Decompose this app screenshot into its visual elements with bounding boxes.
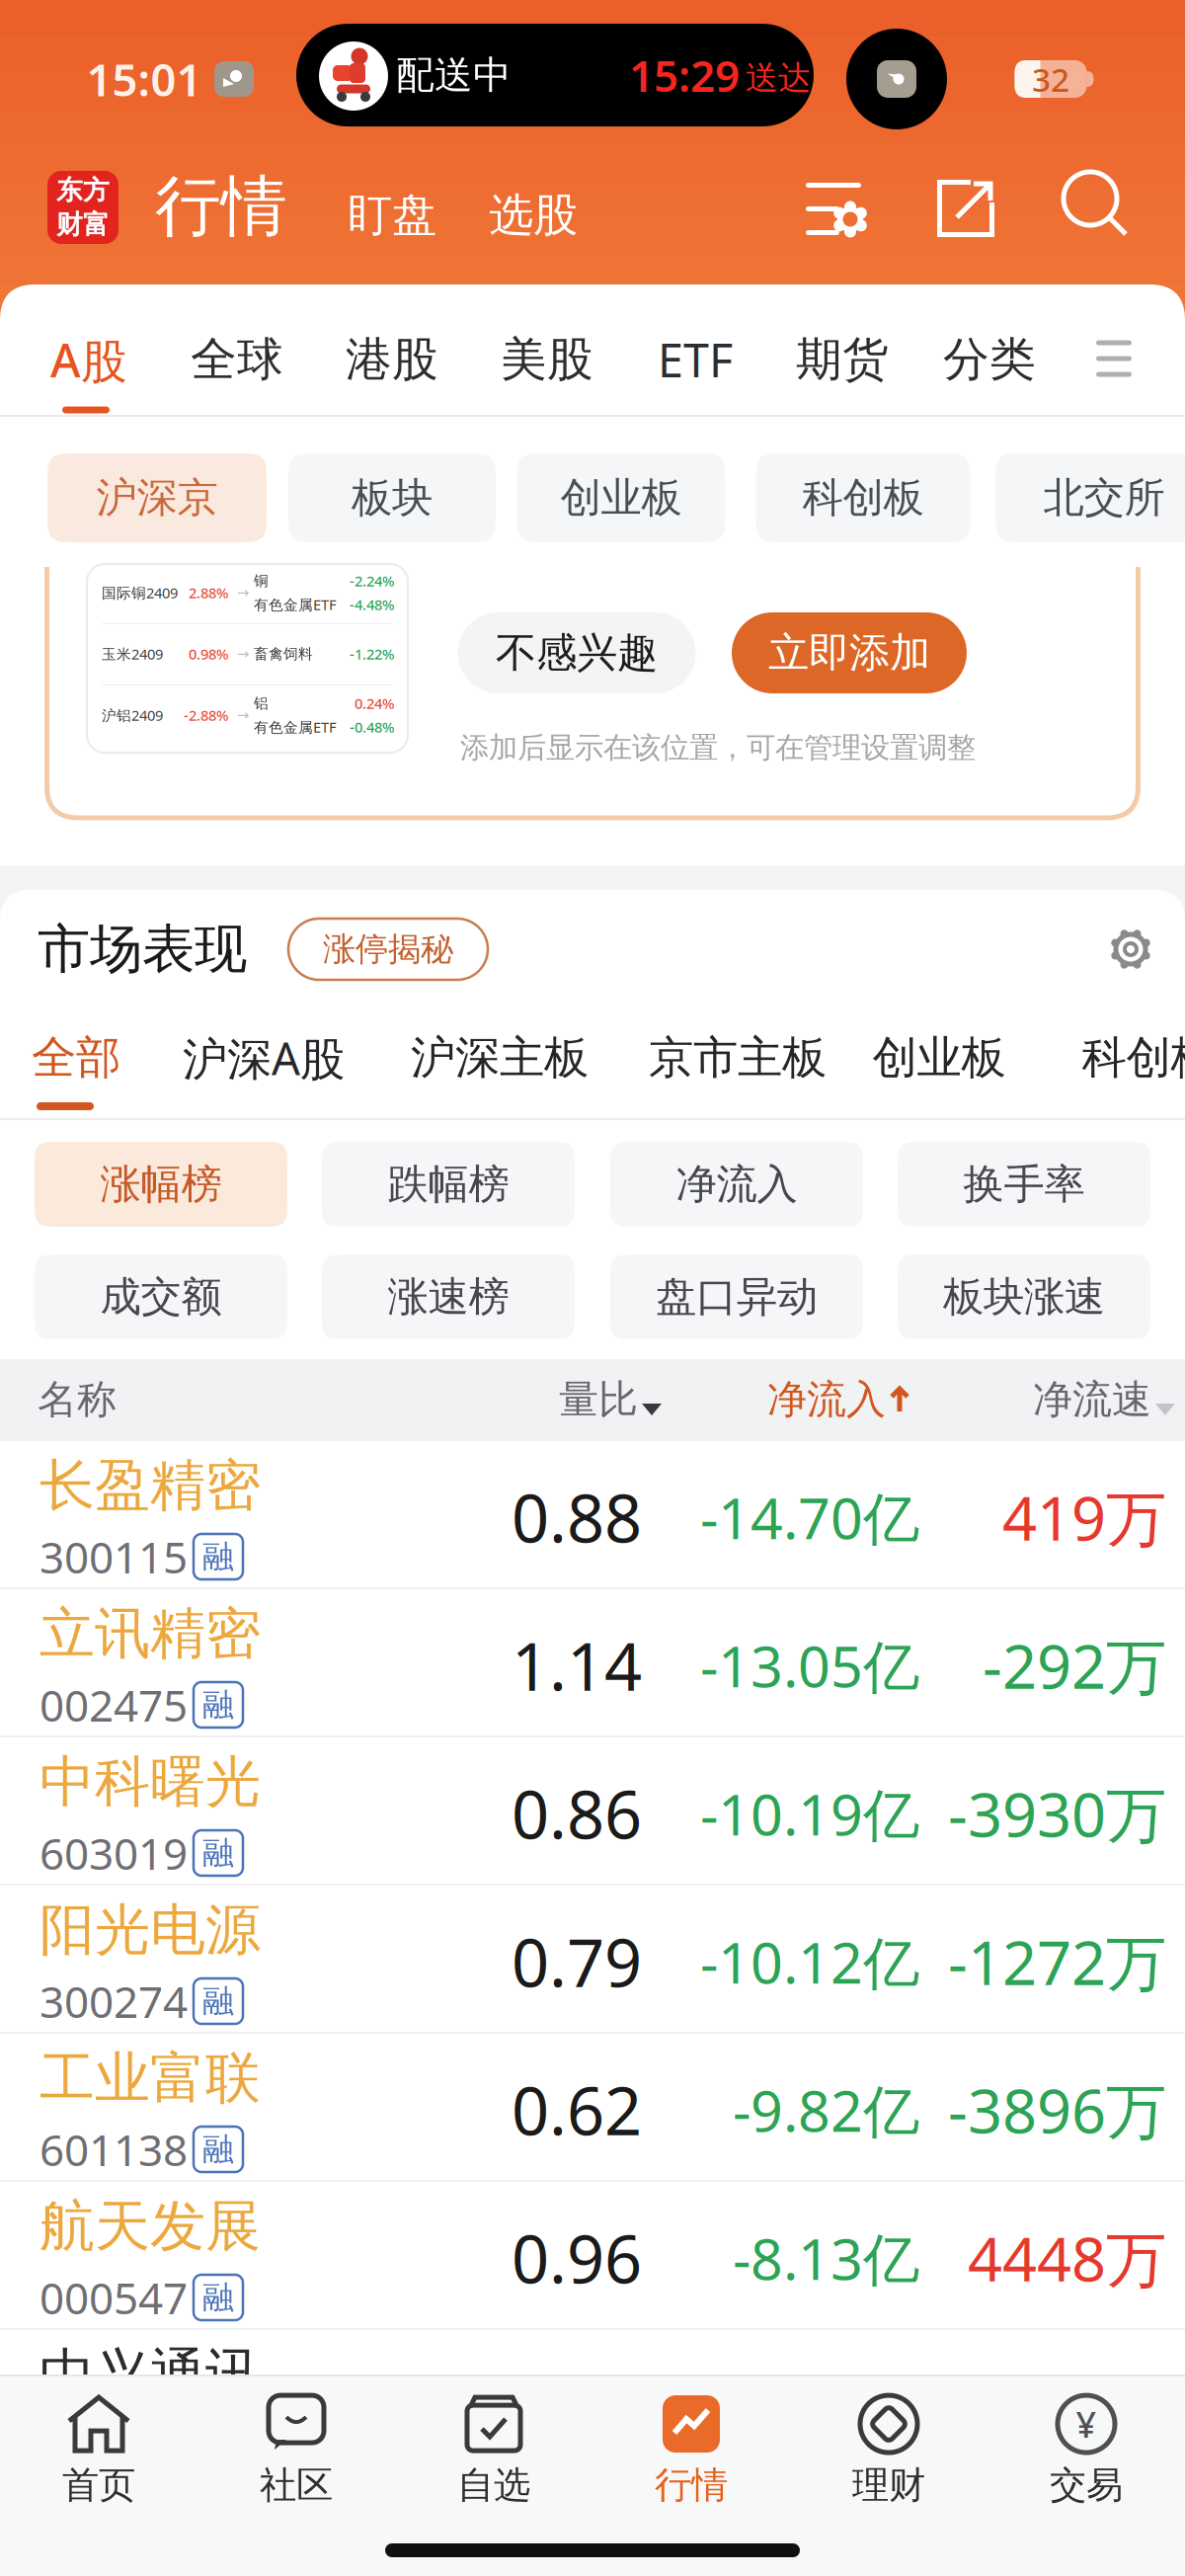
staticText: -3930万: [948, 1773, 1166, 1854]
staticText: ETF: [658, 329, 733, 390]
staticText: 量比: [559, 1375, 638, 1424]
staticText: 601138: [39, 2120, 188, 2178]
button[interactable]: 量比: [559, 1375, 662, 1424]
button[interactable]: 涨幅榜: [35, 1142, 287, 1227]
button[interactable]: 分享: [937, 180, 994, 237]
staticText: 融: [202, 1685, 234, 1724]
staticText: 融: [202, 2130, 234, 2169]
staticText: 北交所: [1043, 473, 1165, 523]
button[interactable]: ¥: [997, 2382, 1175, 2521]
staticText: -10.12亿: [700, 1924, 919, 1999]
button[interactable]: 选股: [489, 188, 578, 243]
button[interactable]: 涨速榜: [322, 1254, 575, 1339]
button[interactable]: 跌幅榜: [322, 1142, 575, 1227]
button[interactable]: 期货: [796, 331, 889, 388]
button[interactable]: 创业板: [517, 453, 725, 542]
button[interactable]: 净流速: [1033, 1375, 1175, 1424]
button[interactable]: 换手率: [898, 1142, 1150, 1227]
button[interactable]: 净流入: [610, 1142, 863, 1227]
button[interactable]: 沪深主板: [411, 1030, 589, 1085]
staticText: 盘口异动: [656, 1272, 818, 1322]
staticText: 涨速榜: [388, 1272, 509, 1322]
button[interactable]: 首页: [10, 2382, 188, 2521]
staticText: 有色金属ETF: [254, 717, 337, 737]
staticText: 科创板: [802, 473, 924, 523]
staticText: 名称: [38, 1375, 117, 1424]
staticText: 2.88%: [189, 583, 228, 602]
staticText: -3896万: [948, 2070, 1166, 2150]
button[interactable]: 行情: [602, 2382, 780, 2521]
staticText: 0.24%: [355, 694, 394, 713]
button[interactable]: 沪深京: [47, 453, 267, 542]
button[interactable]: 创业板: [872, 1030, 1006, 1085]
button[interactable]: 中科曙光: [0, 1737, 1185, 1886]
staticText: 铝: [254, 694, 269, 712]
staticText: 行情: [655, 2463, 728, 2508]
staticText: 京市主板: [649, 1030, 827, 1085]
button[interactable]: 自选: [405, 2382, 583, 2521]
button[interactable]: 科创板: [1082, 1030, 1185, 1085]
button[interactable]: 板块涨速: [898, 1254, 1150, 1339]
button[interactable]: 设置: [1108, 926, 1153, 972]
button[interactable]: 航天发展: [0, 2182, 1185, 2330]
button[interactable]: 盯盘: [348, 188, 436, 243]
button[interactable]: 立即添加: [732, 612, 967, 693]
button[interactable]: 管理: [806, 181, 871, 238]
staticText: 融: [202, 1834, 234, 1872]
staticText: 首页: [62, 2463, 135, 2508]
button[interactable]: 涨停揭秘: [288, 919, 488, 980]
staticText: 立讯精密: [39, 1600, 261, 1668]
staticText: 融: [202, 1982, 234, 2021]
staticText: 净流入: [676, 1159, 797, 1209]
staticText: 盯盘: [348, 188, 436, 243]
staticText: 成交额: [100, 1272, 222, 1322]
staticText: 跌幅榜: [388, 1159, 509, 1209]
button[interactable]: 立讯精密: [0, 1589, 1185, 1737]
button[interactable]: 社区: [207, 2382, 385, 2521]
button[interactable]: 东方财富: [47, 171, 118, 244]
button[interactable]: 美股: [501, 331, 593, 388]
staticText: 铜: [254, 572, 269, 590]
staticText: 002475: [39, 1676, 188, 1734]
button[interactable]: 理财: [800, 2382, 978, 2521]
staticText: 选股: [489, 188, 578, 243]
button[interactable]: A股: [50, 329, 127, 390]
staticText: →: [237, 584, 249, 601]
staticText: -13.05亿: [700, 1628, 919, 1703]
button[interactable]: 京市主板: [649, 1030, 827, 1085]
button[interactable]: 长盈精密: [0, 1441, 1185, 1589]
staticText: 长盈精密: [39, 1452, 261, 1520]
button[interactable]: 港股: [346, 331, 438, 388]
staticText: 创业板: [872, 1030, 1006, 1085]
staticText: 交易: [1050, 2463, 1123, 2508]
button[interactable]: 全部: [32, 1030, 120, 1085]
staticText: 换手率: [963, 1159, 1085, 1209]
staticText: 期货: [796, 331, 889, 388]
button[interactable]: 阳光电源: [0, 1886, 1185, 2034]
button[interactable]: 分类: [943, 331, 1036, 388]
button[interactable]: 板块: [288, 453, 496, 542]
staticText: -1.22%: [350, 644, 394, 664]
staticText: 全部: [32, 1030, 120, 1085]
button[interactable]: 全球: [191, 331, 283, 388]
button[interactable]: ETF: [658, 329, 733, 390]
button[interactable]: 沪深A股: [183, 1028, 345, 1088]
button[interactable]: 北交所: [995, 453, 1185, 542]
button[interactable]: 盘口异动: [610, 1254, 863, 1339]
staticText: 603019: [39, 1824, 188, 1882]
button[interactable]: 净流入: [767, 1375, 909, 1424]
button[interactable]: 科创板: [756, 453, 970, 542]
button[interactable]: 搜索: [1064, 172, 1129, 237]
staticText: 添加后显示在该位置，可在管理设置调整: [460, 730, 976, 765]
staticText: 社区: [260, 2463, 333, 2508]
staticText: 东方: [56, 174, 110, 206]
button[interactable]: 工业富联: [0, 2034, 1185, 2182]
button[interactable]: 更多: [1096, 340, 1132, 377]
button[interactable]: 不感兴趣: [458, 612, 696, 693]
staticText: 涨幅榜: [100, 1159, 222, 1209]
staticText: 0.98%: [189, 644, 228, 664]
staticText: 自选: [457, 2463, 530, 2508]
button[interactable]: 成交额: [35, 1254, 287, 1339]
staticText: 0.79: [512, 1918, 642, 2005]
staticText: 32: [1032, 57, 1069, 101]
